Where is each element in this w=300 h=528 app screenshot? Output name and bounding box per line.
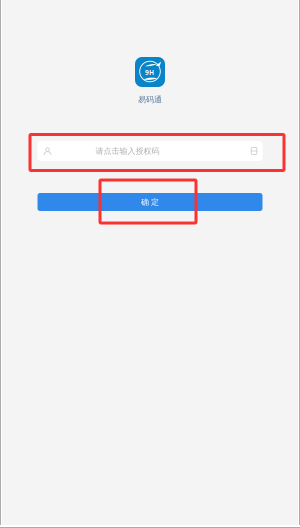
staticText: 易码通	[138, 95, 162, 104]
button[interactable]: 请点击输入授权码	[37, 141, 262, 161]
button[interactable]: 确 定	[37, 193, 262, 211]
staticText: 请点击输入授权码	[95, 146, 159, 156]
staticText: 确 定	[141, 197, 159, 207]
button[interactable]: 扫一扫	[245, 141, 263, 161]
staticText: 9H	[145, 68, 154, 77]
